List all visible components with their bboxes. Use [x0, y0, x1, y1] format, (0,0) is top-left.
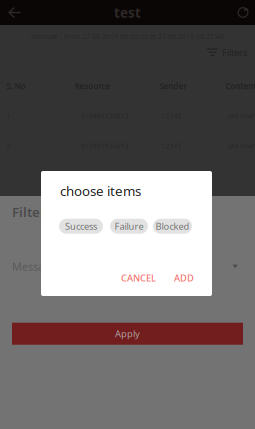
button[interactable]: Success [59, 219, 103, 234]
button[interactable]: Back [3, 0, 25, 25]
staticText: Failure [114, 220, 143, 232]
staticText: Content [225, 81, 255, 91]
staticText: Sender [159, 81, 186, 91]
button[interactable]: Refresh [231, 0, 255, 25]
staticText: test [114, 4, 141, 21]
staticText: choose items [60, 182, 141, 200]
staticText: CANCEL [121, 272, 156, 284]
button[interactable]: Apply [12, 323, 243, 345]
button[interactable]: CANCEL [116, 267, 161, 289]
staticText: ADD [174, 272, 194, 284]
staticText: absolute : From 27-09-2019 09:00:00 to 2… [31, 32, 224, 41]
staticText: Apply [115, 327, 140, 340]
staticText: S. No [6, 81, 25, 91]
staticText: Filters [222, 46, 247, 59]
staticText: Resource [74, 81, 110, 91]
staticText: Message [12, 260, 57, 274]
staticText: Blocked [155, 220, 189, 232]
staticText: Filters [12, 203, 53, 221]
button[interactable]: Failure [110, 219, 148, 234]
button[interactable]: Blocked [153, 219, 192, 234]
button[interactable]: ADD [169, 267, 199, 289]
staticText: Success [65, 220, 97, 232]
